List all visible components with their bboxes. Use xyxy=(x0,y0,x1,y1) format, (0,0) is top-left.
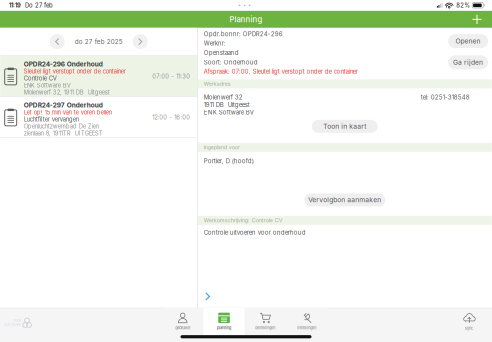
button[interactable]: Add xyxy=(467,11,487,28)
staticText: Do 27 feb xyxy=(21,2,53,9)
staticText: Controle uitvoeren voor onderhoud xyxy=(204,229,306,236)
staticText: do 27 feb 2025 xyxy=(75,38,123,45)
staticText: Molenwerf 32, 1911 DB Uitgeest xyxy=(24,89,110,96)
button[interactable]: instellingen xyxy=(286,308,327,338)
staticText: • • • xyxy=(238,2,251,9)
staticText: Let op! 15 min van te voren bellen xyxy=(24,109,112,116)
staticText: planning xyxy=(217,326,231,330)
staticText: ENK Software BV xyxy=(204,109,254,116)
staticText: ENK Software BV xyxy=(24,82,71,89)
button[interactable]: Toon in kaart xyxy=(312,120,378,133)
staticText: Ga rijden xyxy=(453,58,483,66)
button[interactable]: Previous day xyxy=(49,33,66,50)
staticText: Openluchtzwembad De Zien xyxy=(24,123,99,130)
staticText: Openen xyxy=(456,37,481,45)
button[interactable]: Ga rijden xyxy=(448,55,488,69)
staticText: 11:19 xyxy=(9,2,21,9)
staticText: tel: 0251-318548 xyxy=(421,94,470,101)
button[interactable]: Sync xyxy=(449,308,489,338)
staticText: Werkomschrijving: Controle CV xyxy=(204,217,283,224)
staticText: gebruiker xyxy=(175,326,190,330)
staticText: Sleutel ligt verstopt onder de container xyxy=(24,68,126,75)
staticText: OPDR24-297 Onderhoud xyxy=(24,101,103,109)
staticText: 07:00 - 11:30 xyxy=(152,73,190,80)
button[interactable]: Openen xyxy=(448,34,488,48)
button[interactable]: planning xyxy=(203,308,245,338)
staticText: Openstaand xyxy=(204,49,239,57)
button[interactable]: Next day xyxy=(132,33,149,50)
staticText: Soort: Onderhoud xyxy=(204,59,258,66)
staticText: Afspraak: 07:00. Sleutel ligt verstopt o… xyxy=(204,68,358,75)
button[interactable]: Next xyxy=(200,287,216,306)
staticText: zienlaan 8, 1911TR UITGEEST xyxy=(24,130,103,137)
staticText: Planning xyxy=(229,15,262,24)
staticText: Molenwerf 32 xyxy=(204,94,243,101)
button[interactable]: OPDR24-296 Onderhoud xyxy=(0,56,197,97)
staticText: SOFTWARE xyxy=(4,323,21,327)
staticText: Portier, D (hoofd) xyxy=(204,157,254,165)
staticText: bestellingen xyxy=(255,326,275,330)
staticText: Vervolgbon aanmaken xyxy=(308,196,381,204)
staticText: 1911 DB Uitgeest xyxy=(204,101,250,108)
button[interactable]: gebruiker xyxy=(162,308,203,338)
staticText: Toon in kaart xyxy=(323,122,366,130)
button[interactable]: OPDR24-297 Onderhoud xyxy=(0,97,197,138)
button[interactable]: bestellingen xyxy=(245,308,286,338)
staticText: instellingen xyxy=(297,326,316,330)
staticText: OPDR24-296 Onderhoud xyxy=(24,60,103,68)
button[interactable]: Vervolgbon aanmaken xyxy=(304,193,385,206)
staticText: Ingepland voor xyxy=(204,144,240,151)
staticText: Werkadres xyxy=(204,81,231,87)
staticText: Opdr.bonnr: OPDR24-296 xyxy=(204,30,283,38)
staticText: Controle CV xyxy=(24,75,57,82)
staticText: YOUR xyxy=(13,319,21,323)
staticText: sync xyxy=(465,326,473,331)
staticText: 82% xyxy=(454,2,472,9)
staticText: Luchtfilter vervangen xyxy=(24,116,79,123)
staticText: 12:00 - 16:00 xyxy=(152,114,190,121)
staticText: Werknr: xyxy=(204,40,226,47)
